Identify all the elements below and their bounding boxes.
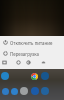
button[interactable]: Lockdown <box>16 60 21 65</box>
button[interactable]: Messages <box>11 88 18 95</box>
button[interactable]: Telegram <box>1 72 9 80</box>
button[interactable]: Browser <box>31 87 39 95</box>
button[interactable]: Camera <box>20 87 28 95</box>
button[interactable]: Chrome <box>31 73 38 80</box>
button[interactable]: Phone <box>2 88 9 95</box>
button[interactable]: Screenshot <box>2 60 7 65</box>
button[interactable]: Silent <box>41 60 46 65</box>
button[interactable]: Перезагрузка <box>0 48 64 59</box>
button[interactable]: Store <box>41 72 49 80</box>
button[interactable]: Отключить питание <box>0 37 64 48</box>
staticText: Отключить питание <box>10 40 53 46</box>
staticText: Перезагрузка <box>10 51 39 57</box>
button[interactable]: Apps <box>41 87 49 95</box>
button[interactable]: Theme <box>26 60 31 65</box>
